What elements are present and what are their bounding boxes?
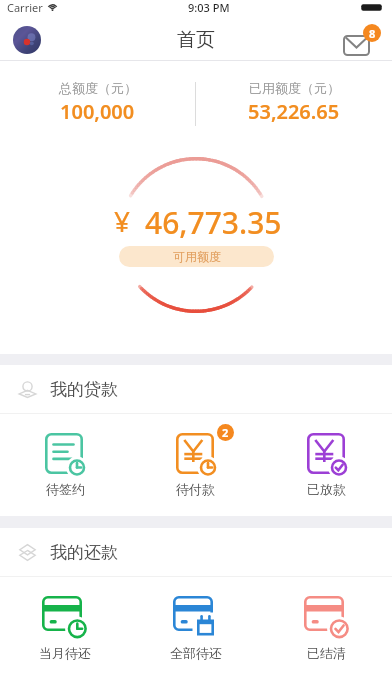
staticText: 53,226.65 <box>248 98 340 125</box>
button[interactable]: Messages <box>343 24 381 56</box>
staticText: 100,000 <box>60 98 135 125</box>
staticText: Carrier <box>7 0 43 15</box>
staticText: 我的贷款 <box>50 379 118 400</box>
button[interactable]: 已放款 <box>261 414 392 516</box>
button[interactable]: 2 <box>130 414 261 516</box>
button[interactable]: 待签约 <box>0 414 130 516</box>
staticText: 已用额度（元） <box>249 80 340 96</box>
staticText: 已放款 <box>307 481 346 497</box>
staticText: 已结清 <box>307 645 346 661</box>
button[interactable]: Profile <box>13 26 41 54</box>
staticText: 8 <box>369 26 376 41</box>
staticText: ¥ <box>114 202 131 240</box>
button[interactable]: 全部待还 <box>130 577 261 679</box>
staticText: 可用额度 <box>173 249 221 264</box>
staticText: 我的还款 <box>50 542 118 563</box>
staticText: 2 <box>222 425 229 440</box>
staticText: 待签约 <box>46 481 85 497</box>
staticText: 46,773.35 <box>145 202 282 243</box>
button[interactable]: 当月待还 <box>0 577 130 679</box>
staticText: 当月待还 <box>39 645 91 661</box>
button[interactable]: 已结清 <box>261 577 392 679</box>
staticText: 待付款 <box>176 481 215 497</box>
staticText: 全部待还 <box>170 645 222 661</box>
staticText: 9:03 PM <box>188 0 230 15</box>
staticText: 总额度（元） <box>59 80 137 96</box>
staticText: 首页 <box>177 28 215 52</box>
